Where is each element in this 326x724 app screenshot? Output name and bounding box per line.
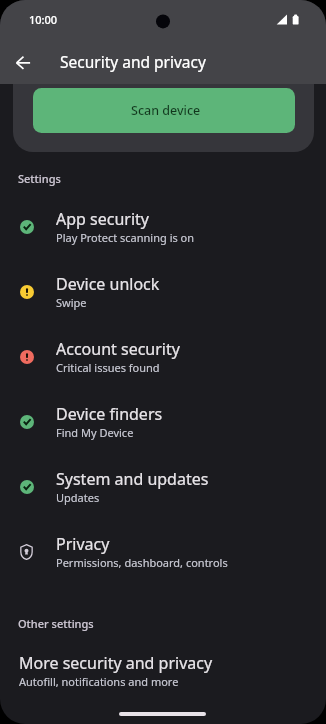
button[interactable]: Device unlock xyxy=(0,259,326,324)
staticText: Play Protect scanning is on xyxy=(56,230,195,245)
staticText: Account security xyxy=(56,338,180,360)
staticText: Swipe xyxy=(56,295,87,310)
button[interactable]: Device finders xyxy=(0,389,326,454)
staticText: Settings xyxy=(18,171,61,186)
button[interactable]: Scan device xyxy=(33,88,295,133)
staticText: Critical issues found xyxy=(56,360,160,375)
staticText: Other settings xyxy=(18,616,94,631)
button[interactable]: Privacy xyxy=(0,519,326,584)
staticText: Autofill, notifications and more xyxy=(19,674,179,689)
staticText: App security xyxy=(56,208,149,230)
staticText: Security and privacy xyxy=(60,51,206,72)
staticText: More security and privacy xyxy=(19,652,213,674)
staticText: Device finders xyxy=(56,403,163,425)
staticText: Scan device xyxy=(131,102,201,119)
staticText: 10:00 xyxy=(29,12,58,27)
button[interactable]: App security xyxy=(0,194,326,259)
button[interactable]: System and updates xyxy=(0,454,326,519)
button[interactable]: Back xyxy=(2,42,44,84)
staticText: System and updates xyxy=(56,468,209,490)
staticText: Privacy xyxy=(56,533,110,555)
button[interactable]: More security and privacy xyxy=(0,638,326,703)
staticText: Device unlock xyxy=(56,273,160,295)
staticText: Permissions, dashboard, controls xyxy=(56,555,228,570)
staticText: Updates xyxy=(56,490,100,505)
button[interactable]: Account security xyxy=(0,324,326,389)
staticText: Find My Device xyxy=(56,425,134,440)
